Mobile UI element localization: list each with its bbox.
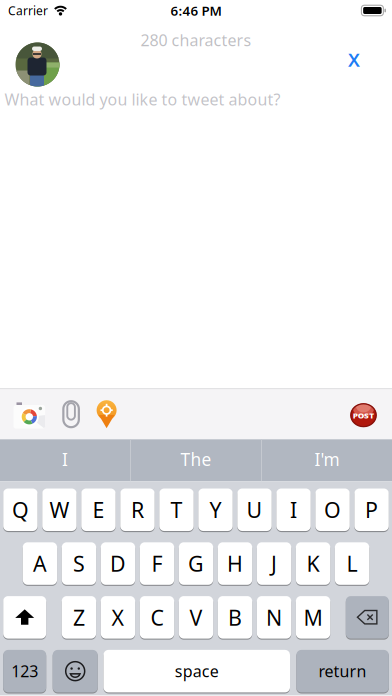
button[interactable]: B bbox=[218, 596, 252, 639]
button[interactable]: X bbox=[101, 596, 135, 639]
staticText: D bbox=[110, 549, 126, 578]
button[interactable]: V bbox=[179, 596, 213, 639]
button[interactable]: Camera bbox=[13, 401, 45, 427]
button[interactable]: Shift bbox=[3, 596, 46, 639]
staticText: C bbox=[150, 603, 163, 631]
button[interactable]: Space bbox=[103, 650, 290, 692]
button[interactable]: N bbox=[257, 596, 291, 639]
button[interactable]: Profile photo bbox=[15, 42, 59, 86]
staticText: J bbox=[271, 549, 277, 578]
staticText: A bbox=[33, 549, 47, 578]
button[interactable]: A bbox=[23, 542, 57, 585]
button[interactable]: G bbox=[179, 542, 213, 585]
staticText: I'm bbox=[314, 448, 339, 471]
button[interactable]: Location bbox=[96, 400, 117, 428]
button[interactable]: S bbox=[62, 542, 96, 585]
button[interactable]: J bbox=[257, 542, 291, 585]
staticText: U bbox=[246, 496, 262, 524]
button[interactable]: R bbox=[120, 488, 155, 531]
staticText: Carrier bbox=[8, 2, 48, 18]
button[interactable]: O bbox=[315, 488, 350, 531]
staticText: N bbox=[266, 603, 282, 631]
button[interactable]: I bbox=[276, 488, 311, 531]
button[interactable]: K bbox=[296, 542, 330, 585]
staticText: Y bbox=[209, 496, 221, 524]
button[interactable]: F bbox=[140, 542, 174, 585]
staticText: E bbox=[92, 496, 104, 524]
staticText: 280 characters bbox=[140, 29, 251, 51]
staticText: 6:46 PM bbox=[170, 2, 221, 19]
staticText: X bbox=[348, 47, 360, 72]
staticText: W bbox=[49, 496, 69, 524]
staticText: R bbox=[131, 496, 144, 524]
button[interactable]: Numbers bbox=[3, 650, 46, 692]
button[interactable]: I'm bbox=[262, 439, 392, 481]
button[interactable]: D bbox=[101, 542, 135, 585]
staticText: K bbox=[307, 549, 320, 578]
staticText: X bbox=[111, 603, 124, 631]
staticText: I bbox=[290, 496, 297, 524]
button[interactable]: Close bbox=[348, 47, 360, 72]
staticText: H bbox=[227, 549, 243, 578]
button[interactable]: I bbox=[0, 439, 130, 481]
staticText: M bbox=[304, 603, 323, 631]
button[interactable]: Emoji bbox=[53, 650, 98, 692]
staticText: Q bbox=[12, 496, 29, 524]
button[interactable]: Delete bbox=[346, 596, 389, 639]
button[interactable]: Z bbox=[62, 596, 96, 639]
staticText: B bbox=[228, 603, 242, 631]
staticText: S bbox=[73, 549, 85, 578]
button[interactable]: The bbox=[131, 439, 261, 481]
staticText: P bbox=[365, 496, 378, 524]
staticText: I bbox=[62, 448, 68, 471]
button[interactable]: L bbox=[335, 542, 369, 585]
button[interactable]: P bbox=[354, 488, 389, 531]
staticText: T bbox=[170, 496, 182, 524]
staticText: 123 bbox=[11, 660, 38, 682]
button[interactable]: E bbox=[81, 488, 116, 531]
button[interactable]: T bbox=[159, 488, 194, 531]
staticText: space bbox=[175, 660, 219, 682]
staticText: V bbox=[189, 603, 202, 631]
staticText: The bbox=[180, 448, 211, 471]
button[interactable]: Return bbox=[296, 650, 389, 692]
button[interactable]: W bbox=[42, 488, 77, 531]
staticText: POST bbox=[353, 410, 374, 421]
button[interactable]: H bbox=[218, 542, 252, 585]
button[interactable]: M bbox=[296, 596, 330, 639]
staticText: return bbox=[319, 660, 367, 682]
staticText: L bbox=[347, 549, 358, 578]
button[interactable]: U bbox=[237, 488, 272, 531]
staticText: O bbox=[324, 496, 341, 524]
button[interactable]: Q bbox=[3, 488, 38, 531]
staticText: What would you like to tweet about? bbox=[4, 89, 280, 110]
button[interactable]: C bbox=[140, 596, 174, 639]
button[interactable]: Y bbox=[198, 488, 233, 531]
staticText: F bbox=[151, 549, 162, 578]
button[interactable]: Attach file bbox=[62, 400, 80, 428]
button[interactable]: Post bbox=[350, 401, 376, 427]
staticText: G bbox=[188, 549, 204, 578]
staticText: Z bbox=[73, 603, 85, 631]
